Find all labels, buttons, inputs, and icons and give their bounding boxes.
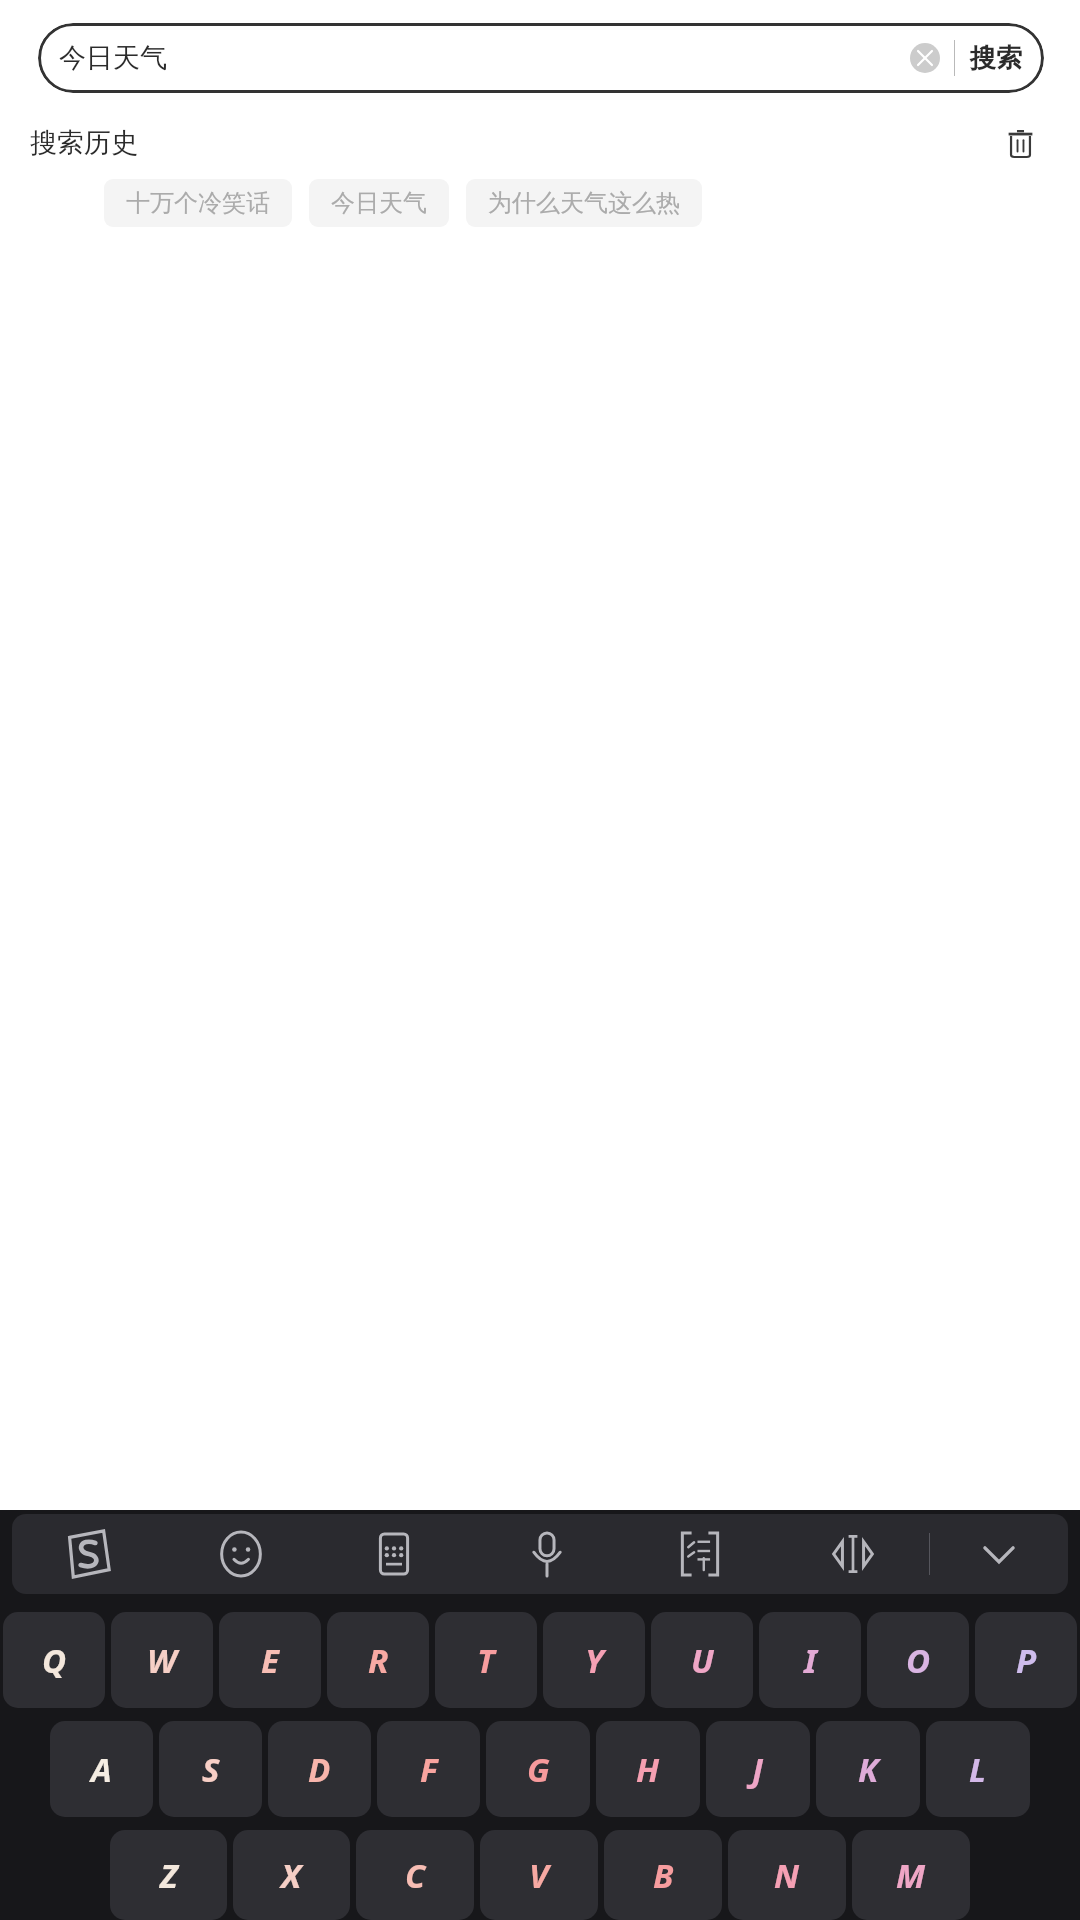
- staticText: E: [261, 1638, 279, 1683]
- staticText: D: [308, 1747, 331, 1792]
- button[interactable]: X: [233, 1830, 350, 1920]
- button[interactable]: Keyboard layout: [317, 1514, 470, 1594]
- staticText: J: [752, 1747, 764, 1792]
- button[interactable]: K: [816, 1721, 920, 1817]
- staticText: T: [477, 1638, 495, 1683]
- button[interactable]: Sogou input method: [12, 1514, 164, 1594]
- button[interactable]: G: [486, 1721, 590, 1817]
- button[interactable]: B: [604, 1830, 722, 1920]
- button[interactable]: H: [596, 1721, 700, 1817]
- button[interactable]: I: [759, 1612, 861, 1708]
- staticText: W: [147, 1638, 177, 1683]
- button[interactable]: F: [377, 1721, 480, 1817]
- button[interactable]: Clear: [910, 43, 940, 73]
- button[interactable]: Translate: [623, 1514, 776, 1594]
- button[interactable]: 搜索: [970, 42, 1022, 75]
- staticText: G: [527, 1747, 550, 1792]
- button[interactable]: V: [480, 1830, 598, 1920]
- button[interactable]: Y: [543, 1612, 645, 1708]
- button[interactable]: Z: [110, 1830, 227, 1920]
- staticText: Q: [42, 1638, 67, 1683]
- button[interactable]: R: [327, 1612, 429, 1708]
- button[interactable]: W: [111, 1612, 213, 1708]
- button[interactable]: P: [975, 1612, 1077, 1708]
- staticText: 搜索: [970, 42, 1022, 75]
- button[interactable]: 今日天气: [38, 23, 1044, 93]
- staticText: N: [774, 1853, 800, 1898]
- staticText: R: [368, 1638, 389, 1683]
- staticText: M: [896, 1853, 926, 1898]
- staticText: 搜索历史: [30, 126, 138, 160]
- staticText: A: [91, 1747, 112, 1792]
- staticText: S: [202, 1747, 220, 1792]
- button[interactable]: Q: [3, 1612, 105, 1708]
- button[interactable]: Hide keyboard: [930, 1514, 1068, 1594]
- staticText: L: [969, 1747, 987, 1792]
- button[interactable]: J: [706, 1721, 810, 1817]
- button[interactable]: 今日天气: [309, 179, 449, 227]
- button[interactable]: Emoji: [164, 1514, 317, 1594]
- staticText: I: [804, 1638, 817, 1683]
- button[interactable]: Move cursor: [776, 1514, 929, 1594]
- button[interactable]: U: [651, 1612, 753, 1708]
- staticText: O: [906, 1638, 931, 1683]
- button[interactable]: C: [356, 1830, 474, 1920]
- button[interactable]: A: [50, 1721, 153, 1817]
- staticText: X: [281, 1853, 302, 1898]
- staticText: U: [691, 1638, 714, 1683]
- staticText: V: [529, 1853, 549, 1898]
- button[interactable]: L: [926, 1721, 1030, 1817]
- button[interactable]: E: [219, 1612, 321, 1708]
- button[interactable]: 十万个冷笑话: [104, 179, 292, 227]
- button[interactable]: D: [268, 1721, 371, 1817]
- staticText: P: [1016, 1638, 1037, 1683]
- button[interactable]: O: [867, 1612, 969, 1708]
- staticText: 今日天气: [59, 41, 167, 75]
- staticText: C: [405, 1853, 426, 1898]
- staticText: K: [858, 1747, 879, 1792]
- button[interactable]: Clear history: [998, 121, 1042, 165]
- staticText: H: [636, 1747, 660, 1792]
- button[interactable]: T: [435, 1612, 537, 1708]
- button[interactable]: M: [852, 1830, 970, 1920]
- staticText: 为什么天气这么热: [488, 188, 680, 218]
- button[interactable]: N: [728, 1830, 846, 1920]
- button[interactable]: S: [159, 1721, 262, 1817]
- staticText: Z: [160, 1853, 178, 1898]
- staticText: Y: [585, 1638, 604, 1683]
- staticText: B: [653, 1853, 674, 1898]
- button[interactable]: 为什么天气这么热: [466, 179, 702, 227]
- button[interactable]: Voice input: [470, 1514, 623, 1594]
- staticText: 今日天气: [331, 188, 427, 218]
- staticText: F: [420, 1747, 438, 1792]
- staticText: 十万个冷笑话: [126, 188, 270, 218]
